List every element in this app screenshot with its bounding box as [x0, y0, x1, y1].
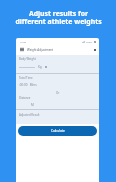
- other: Menu: [20, 48, 24, 51]
- staticText: Kg: [38, 65, 42, 69]
- staticText: :00:00 Mins: [19, 83, 37, 87]
- staticText: Distance: [19, 96, 31, 100]
- button[interactable]: Calculate: [18, 126, 97, 136]
- staticText: Total Time: [19, 76, 33, 80]
- staticText: Or: [56, 91, 60, 95]
- staticText: Adjust results for different athlete wei…: [15, 9, 102, 26]
- button[interactable]: Menu: [20, 44, 96, 55]
- staticText: Adjusted Result: [19, 113, 40, 117]
- staticText: Calculate: [51, 129, 65, 133]
- staticText: Weight Adjustment: [27, 48, 54, 52]
- staticText: M: [31, 103, 34, 107]
- staticText: 12:00: [20, 40, 27, 43]
- staticText: Body Weight: [19, 57, 36, 61]
- staticText: 100%: [86, 40, 93, 43]
